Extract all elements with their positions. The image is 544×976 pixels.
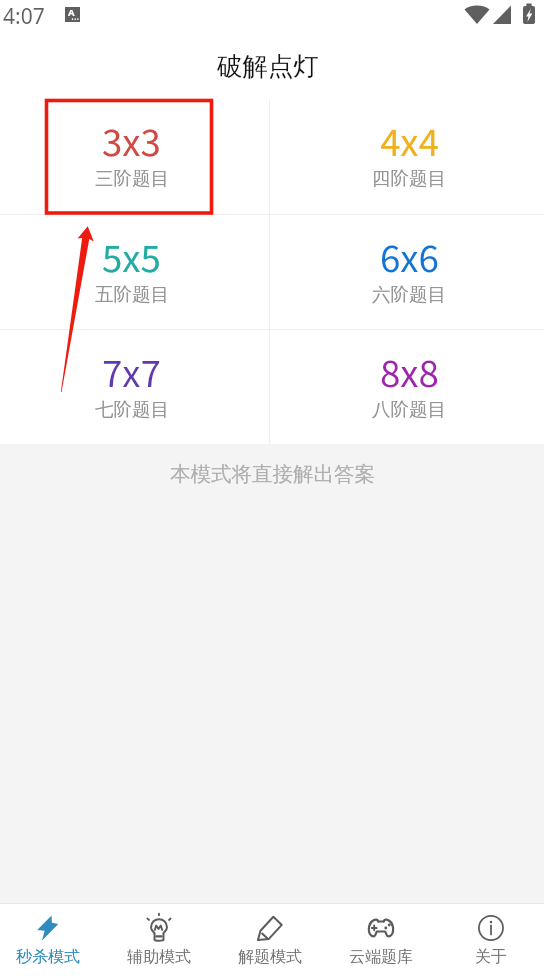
staticText: 破解点灯 <box>217 50 319 82</box>
staticText: 七阶题目 <box>95 398 169 421</box>
staticText: A <box>68 6 75 19</box>
staticText: 3x3 <box>102 114 161 167</box>
staticText: 7x7 <box>102 345 161 398</box>
staticText: 五阶题目 <box>95 283 169 306</box>
button[interactable]: Assist mode <box>105 904 213 976</box>
button[interactable]: 3x3 <box>0 99 269 214</box>
staticText: 4x4 <box>380 114 439 167</box>
staticText: 三阶题目 <box>95 167 169 190</box>
button[interactable]: 6x6 <box>270 215 544 329</box>
staticText: 5x5 <box>102 230 161 283</box>
staticText: 4:07 <box>3 2 45 31</box>
staticText: 6x6 <box>380 230 439 283</box>
staticText: 四阶题目 <box>372 167 446 190</box>
button[interactable]: 5x5 <box>0 215 269 329</box>
button[interactable]: 4x4 <box>270 99 544 214</box>
staticText: 解题模式 <box>238 947 302 967</box>
button[interactable]: Solve mode <box>216 904 324 976</box>
button[interactable]: Cloud library <box>327 904 435 976</box>
staticText: 云端题库 <box>349 947 413 967</box>
staticText: 8x8 <box>380 345 439 398</box>
staticText: 本模式将直接解出答案 <box>170 461 375 487</box>
button[interactable]: 8x8 <box>270 330 544 444</box>
staticText: 关于 <box>475 947 507 967</box>
staticText: 秒杀模式 <box>16 947 80 967</box>
staticText: 六阶题目 <box>372 283 446 306</box>
staticText: 辅助模式 <box>127 947 191 967</box>
button[interactable]: 7x7 <box>0 330 269 444</box>
staticText: 八阶题目 <box>372 398 446 421</box>
button[interactable]: About <box>437 904 544 976</box>
button[interactable]: Instant solve mode <box>0 904 102 976</box>
